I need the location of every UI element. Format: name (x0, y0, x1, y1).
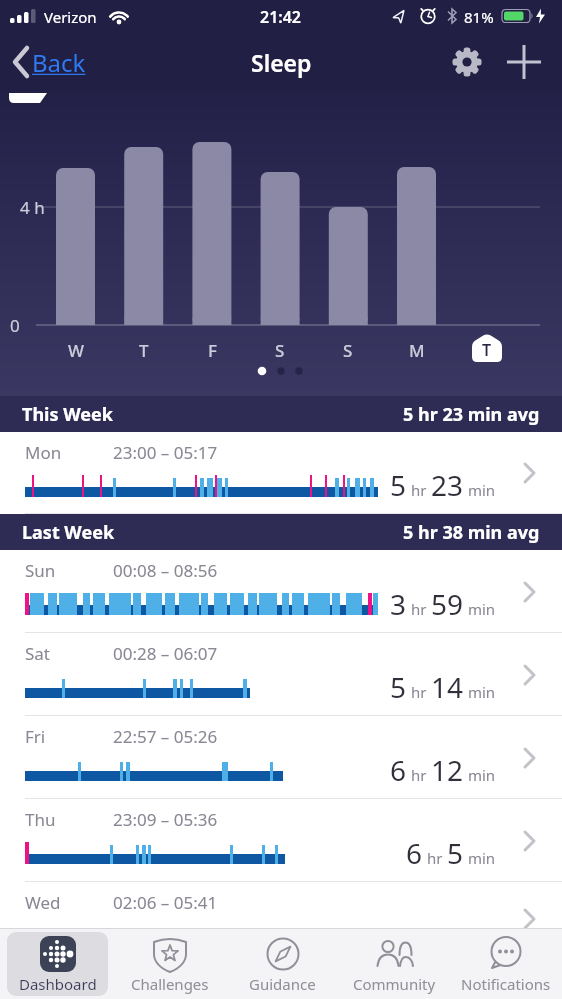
staticText: hr (423, 848, 447, 868)
staticText: 21:42 (260, 6, 302, 28)
staticText: 23 (431, 466, 464, 504)
button[interactable]: Sun (0, 550, 562, 633)
staticText: min (464, 599, 496, 619)
staticText: This Week (22, 402, 113, 427)
staticText: 14 (431, 668, 464, 706)
staticText: Verizon (44, 7, 97, 27)
staticText: 3 (390, 585, 407, 623)
staticText: Notifications (461, 974, 551, 994)
staticText: F (208, 339, 217, 361)
staticText: Wed (25, 891, 61, 914)
staticText: 6 (390, 751, 407, 789)
staticText: 02:06 – 05:41 (113, 891, 218, 914)
staticText: S (275, 339, 285, 361)
staticText: min (464, 480, 496, 500)
staticText: Thu (25, 808, 56, 831)
staticText: Mon (25, 441, 62, 464)
staticText: Back (32, 46, 86, 79)
staticText: Sat (25, 642, 51, 665)
staticText: 5 hr 23 min avg (403, 402, 540, 427)
staticText: min (464, 682, 496, 702)
staticText: hr (407, 480, 431, 500)
button[interactable]: Challenges (114, 928, 226, 999)
button[interactable] (449, 44, 485, 80)
staticText: T (482, 339, 492, 361)
staticText: S (343, 339, 353, 361)
button[interactable]: Notifications (450, 928, 562, 999)
button[interactable]: Mon (0, 432, 562, 514)
staticText: T (139, 339, 149, 361)
button[interactable]: Dashboard (7, 932, 108, 996)
staticText: hr (407, 765, 431, 785)
button[interactable]: Wed (0, 882, 562, 928)
button[interactable]: Thu (0, 799, 562, 882)
button[interactable]: Guidance (226, 928, 338, 999)
staticText: hr (407, 682, 431, 702)
button[interactable]: Back (10, 45, 86, 79)
button[interactable]: T (472, 334, 502, 362)
button[interactable]: Sat (0, 633, 562, 716)
staticText: W (68, 339, 84, 361)
staticText: Challenges (131, 974, 209, 994)
staticText: 5 (390, 668, 407, 706)
staticText: 00:28 – 06:07 (113, 642, 218, 665)
staticText: Fri (25, 725, 46, 748)
staticText: 0 (10, 314, 20, 337)
staticText: 23:09 – 05:36 (113, 808, 218, 831)
staticText: 5 (390, 466, 407, 504)
staticText: 22:57 – 05:26 (113, 725, 218, 748)
staticText: M (409, 339, 425, 361)
staticText: Community (353, 974, 436, 994)
staticText: Guidance (249, 974, 316, 994)
button[interactable] (506, 44, 542, 80)
staticText: Last Week (22, 520, 115, 545)
button[interactable]: Fri (0, 716, 562, 799)
staticText: 00:08 – 08:56 (113, 559, 218, 582)
staticText: hr (407, 599, 431, 619)
staticText: 59 (431, 585, 464, 623)
staticText: 4 h (20, 196, 45, 219)
button[interactable]: Community (338, 928, 450, 999)
staticText: 6 (406, 834, 423, 872)
staticText: min (464, 848, 496, 868)
staticText: min (464, 765, 496, 785)
staticText: 12 (431, 751, 464, 789)
staticText: Dashboard (19, 974, 97, 994)
staticText: 23:00 – 05:17 (113, 441, 218, 464)
staticText: 81% (464, 7, 494, 27)
staticText: Sun (25, 559, 56, 582)
staticText: Sleep (251, 47, 312, 78)
staticText: 5 hr 38 min avg (403, 520, 540, 545)
staticText: 5 (447, 834, 464, 872)
